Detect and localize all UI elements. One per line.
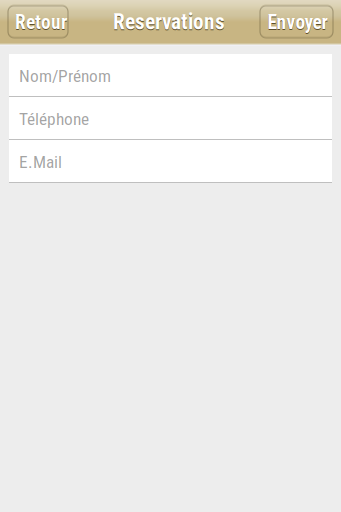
staticText: Nom/Prénom — [19, 66, 111, 86]
staticText: Reservations — [113, 9, 225, 34]
button[interactable]: Nom/Prénom — [9, 54, 332, 96]
staticText: Retour — [15, 11, 67, 34]
button[interactable]: Envoyer — [260, 4, 333, 37]
staticText: Téléphone — [19, 109, 89, 129]
button[interactable]: Téléphone — [9, 97, 332, 139]
button[interactable]: E.Mail — [9, 140, 332, 182]
button[interactable]: Retour — [8, 4, 68, 37]
staticText: Retour — [15, 12, 67, 35]
staticText: Envoyer — [267, 12, 327, 35]
staticText: Envoyer — [267, 11, 327, 34]
staticText: Reservations — [113, 10, 225, 35]
staticText: E.Mail — [19, 152, 62, 172]
